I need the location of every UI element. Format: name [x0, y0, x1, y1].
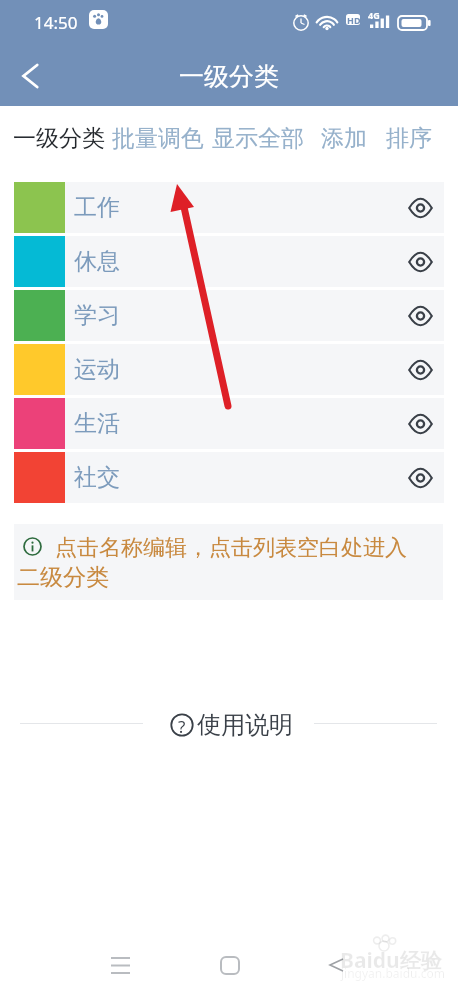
button[interactable]: 工作: [14, 182, 444, 233]
button[interactable]: 排序: [386, 124, 432, 153]
staticText: 4G: [368, 9, 380, 21]
staticText: 运动: [74, 355, 120, 384]
button[interactable]: 社交: [14, 452, 444, 503]
button[interactable]: Toggle visibility: [398, 402, 442, 446]
staticText: Baidu经验: [340, 946, 442, 975]
button[interactable]: 学习: [14, 290, 444, 341]
button[interactable]: ?: [170, 702, 293, 732]
button[interactable]: Recents: [96, 941, 144, 989]
button[interactable]: 生活: [14, 398, 444, 449]
button[interactable]: 运动: [14, 344, 444, 395]
staticText: 社交: [74, 463, 120, 492]
button[interactable]: Back: [312, 941, 360, 989]
button[interactable]: 点击名称编辑，点击列表空白处进入: [14, 524, 443, 600]
button[interactable]: Toggle visibility: [398, 456, 442, 500]
button[interactable]: Toggle visibility: [398, 348, 442, 392]
staticText: HD: [347, 14, 361, 26]
button[interactable]: 批量调色: [112, 124, 204, 153]
button[interactable]: 一级分类: [13, 124, 105, 153]
button[interactable]: Toggle visibility: [398, 186, 442, 230]
button[interactable]: 休息: [14, 236, 444, 287]
button[interactable]: Toggle visibility: [398, 240, 442, 284]
staticText: 休息: [74, 247, 120, 276]
staticText: 一级分类: [179, 61, 279, 92]
staticText: jingyan.baidu.com: [341, 965, 445, 981]
button[interactable]: Toggle visibility: [398, 294, 442, 338]
button[interactable]: 添加: [321, 124, 367, 153]
staticText: 学习: [74, 301, 120, 330]
staticText: 点击名称编辑，点击列表空白处进入: [55, 534, 407, 562]
staticText: 二级分类: [17, 563, 109, 592]
staticText: 生活: [74, 409, 120, 438]
button[interactable]: 显示全部: [212, 124, 304, 153]
staticText: ?: [178, 715, 186, 738]
button[interactable]: Home: [206, 941, 254, 989]
staticText: 使用说明: [197, 710, 293, 740]
button[interactable]: Back: [3, 49, 57, 103]
staticText: 工作: [74, 193, 120, 222]
staticText: 14:50: [34, 11, 78, 34]
